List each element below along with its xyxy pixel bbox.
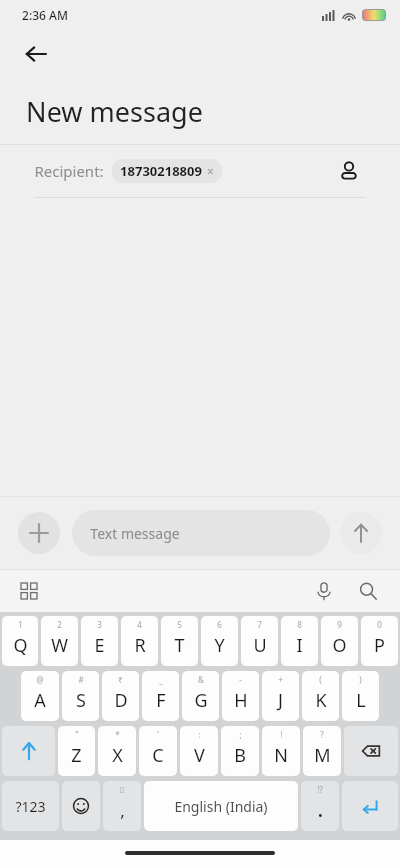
button[interactable]: ? [303, 726, 341, 776]
button[interactable]: 9 [321, 616, 358, 666]
button[interactable]: 5 [161, 616, 198, 666]
staticText: Z [71, 743, 82, 768]
button[interactable]: 2 [41, 616, 78, 666]
staticText: 9 [337, 619, 342, 630]
staticText: Q [13, 633, 28, 658]
button[interactable]: Add attachment [18, 512, 60, 554]
button[interactable]: ; [221, 726, 259, 776]
staticText: D [114, 688, 128, 713]
button[interactable]: ) [342, 671, 379, 721]
button[interactable]: 1 [2, 616, 38, 666]
button[interactable]: Shift [2, 726, 55, 776]
staticText: ' [157, 729, 159, 740]
staticText: 1 [18, 619, 23, 630]
staticText: Y [214, 633, 225, 658]
button[interactable]: " [58, 726, 95, 776]
staticText: 7 [257, 619, 262, 630]
staticText: * [115, 729, 120, 740]
staticText: M [314, 743, 331, 768]
staticText: B [234, 743, 246, 768]
button[interactable]: Choose contact [332, 154, 366, 188]
staticText: ! [280, 729, 283, 740]
staticText: English (India) [174, 797, 268, 816]
button[interactable]: Text message [72, 510, 330, 556]
staticText: V [194, 743, 205, 768]
button[interactable]: Back [14, 32, 58, 76]
staticText: I [296, 633, 303, 658]
button[interactable]: 4 [121, 616, 158, 666]
staticText: A [34, 688, 46, 713]
staticText: T [174, 633, 185, 658]
staticText: S [76, 688, 86, 713]
staticText: New message [26, 93, 203, 130]
staticText: L [356, 688, 366, 713]
staticText: X [112, 743, 123, 768]
button[interactable]: Voice input [308, 575, 340, 607]
staticText: K [315, 688, 327, 713]
button[interactable]: 18730218809 [112, 159, 222, 183]
staticText: R [134, 633, 146, 658]
button[interactable]: 7 [241, 616, 278, 666]
button[interactable]: 3 [81, 616, 118, 666]
button[interactable]: ' [139, 726, 177, 776]
staticText:  [120, 784, 125, 795]
button[interactable]: Send [340, 512, 382, 554]
staticText: ? [320, 729, 324, 740]
button[interactable]: Enter [342, 781, 398, 831]
staticText: + [278, 674, 283, 685]
button[interactable]: Search [352, 575, 384, 607]
staticText: 0 [377, 619, 382, 630]
staticText: ( [319, 674, 322, 685]
button[interactable]: & [182, 671, 219, 721]
button[interactable]: * [98, 726, 136, 776]
staticText: 2:36 AM [22, 7, 68, 23]
button[interactable]: - [222, 671, 259, 721]
button[interactable]: ₹ [102, 671, 139, 721]
staticText: !? [317, 784, 323, 795]
staticText: . [318, 799, 323, 822]
staticText: U [253, 633, 267, 658]
button[interactable]: ( [302, 671, 339, 721]
staticText: ₹ [118, 674, 123, 685]
button[interactable]: 0 [361, 616, 398, 666]
button[interactable]: 6 [201, 616, 238, 666]
button[interactable]: Comma [103, 781, 141, 831]
staticText: N [274, 743, 288, 768]
staticText: ) [359, 674, 362, 685]
staticText: E [94, 633, 105, 658]
staticText: C [152, 743, 164, 768]
staticText: × [207, 163, 214, 179]
staticText: , [120, 799, 125, 822]
staticText: _ [159, 674, 163, 685]
staticText: : [198, 729, 201, 740]
staticText: ; [239, 729, 242, 740]
button[interactable]: _ [142, 671, 179, 721]
button[interactable]: Backspace [344, 726, 398, 776]
button[interactable]: Emoji [62, 781, 100, 831]
button[interactable]: ! [262, 726, 300, 776]
staticText: W [51, 633, 68, 658]
button[interactable]: !? [301, 781, 339, 831]
button[interactable]: # [62, 671, 99, 721]
button[interactable]: English (India) [144, 781, 298, 831]
staticText: 3 [97, 619, 102, 630]
staticText: F [156, 688, 166, 713]
button[interactable]: 8 [281, 616, 318, 666]
staticText: Text message [90, 524, 180, 543]
staticText: " [75, 729, 79, 740]
button[interactable]: : [180, 726, 218, 776]
staticText: 8 [297, 619, 302, 630]
staticText: 6 [217, 619, 222, 630]
staticText: O [332, 633, 347, 658]
button[interactable]: Keyboard options [14, 576, 44, 606]
staticText: 5 [177, 619, 182, 630]
button[interactable]: ?123 [2, 781, 59, 831]
staticText: & [198, 674, 204, 685]
staticText: Recipient: [34, 161, 104, 181]
staticText: ?123 [15, 797, 46, 816]
staticText: J [278, 688, 283, 713]
staticText: - [239, 674, 242, 685]
button[interactable]: + [262, 671, 299, 721]
staticText: G [194, 688, 208, 713]
button[interactable]: @ [21, 671, 59, 721]
